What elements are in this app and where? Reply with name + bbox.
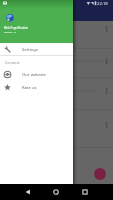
staticText: Contacts bbox=[5, 60, 20, 65]
staticText: 22:18 bbox=[97, 1, 108, 7]
button[interactable]: Home bbox=[50, 184, 62, 200]
button[interactable]: Back bbox=[22, 184, 34, 200]
staticText: Settings bbox=[22, 47, 38, 53]
button[interactable]: Add bbox=[94, 168, 106, 180]
button[interactable]: another site bbox=[0, 78, 113, 110]
button[interactable]: More options bbox=[102, 86, 111, 95]
staticText: Our website bbox=[22, 72, 46, 78]
button[interactable]: More options bbox=[0, 21, 113, 49]
button[interactable]: More options bbox=[102, 121, 111, 130]
button[interactable]: More options bbox=[0, 110, 113, 148]
button[interactable]: Recent apps bbox=[79, 184, 91, 200]
staticText: www.example.com/page bbox=[74, 58, 113, 64]
staticText: Web Page Monitor bbox=[4, 26, 28, 30]
staticText: version 1.5 bbox=[4, 30, 17, 33]
button[interactable]: Our website bbox=[0, 68, 73, 81]
button[interactable]: More options bbox=[102, 25, 111, 34]
button[interactable]: Settings bbox=[0, 44, 73, 55]
button[interactable]: www.example.com/page bbox=[0, 49, 113, 78]
staticText: Rate us bbox=[22, 85, 37, 91]
button[interactable]: More options bbox=[102, 57, 111, 66]
button[interactable]: Rate us bbox=[0, 81, 73, 94]
staticText: another site bbox=[74, 88, 98, 94]
